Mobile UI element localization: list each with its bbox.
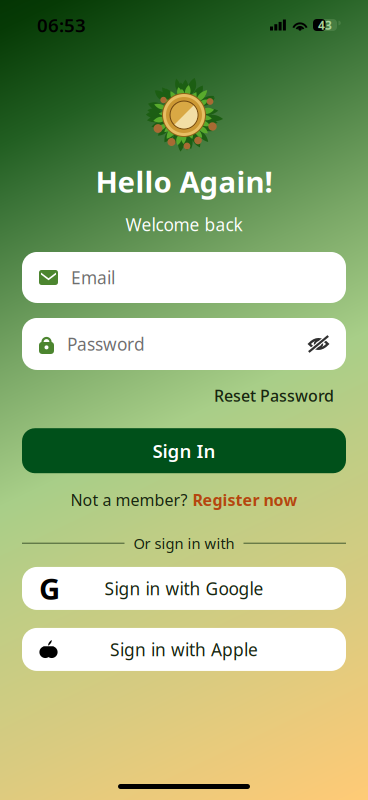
staticText: Sign in with Google <box>104 577 263 600</box>
staticText: G <box>39 569 60 608</box>
staticText: Email <box>71 266 115 289</box>
staticText: Reset Password <box>214 385 334 406</box>
button[interactable]: Sign In <box>22 428 346 473</box>
button[interactable]: Register now <box>192 489 297 510</box>
staticText: Password <box>67 332 145 355</box>
staticText: Hello Again! <box>95 162 272 201</box>
staticText: Register now <box>192 489 297 510</box>
button[interactable]: Email <box>22 252 346 303</box>
staticText: Sign in with Apple <box>110 638 258 661</box>
staticText: 43 <box>318 17 332 33</box>
button[interactable]: Password <box>22 318 346 370</box>
button[interactable]: Sign in with Apple <box>22 628 346 671</box>
staticText: Sign In <box>152 438 215 463</box>
staticText: 06:53 <box>37 13 86 37</box>
button[interactable]: Reset Password <box>214 385 334 406</box>
staticText: Not a member? <box>70 489 187 510</box>
button[interactable]: G <box>22 567 346 610</box>
staticText: Or sign in with <box>133 533 234 553</box>
staticText: Welcome back <box>125 213 242 236</box>
